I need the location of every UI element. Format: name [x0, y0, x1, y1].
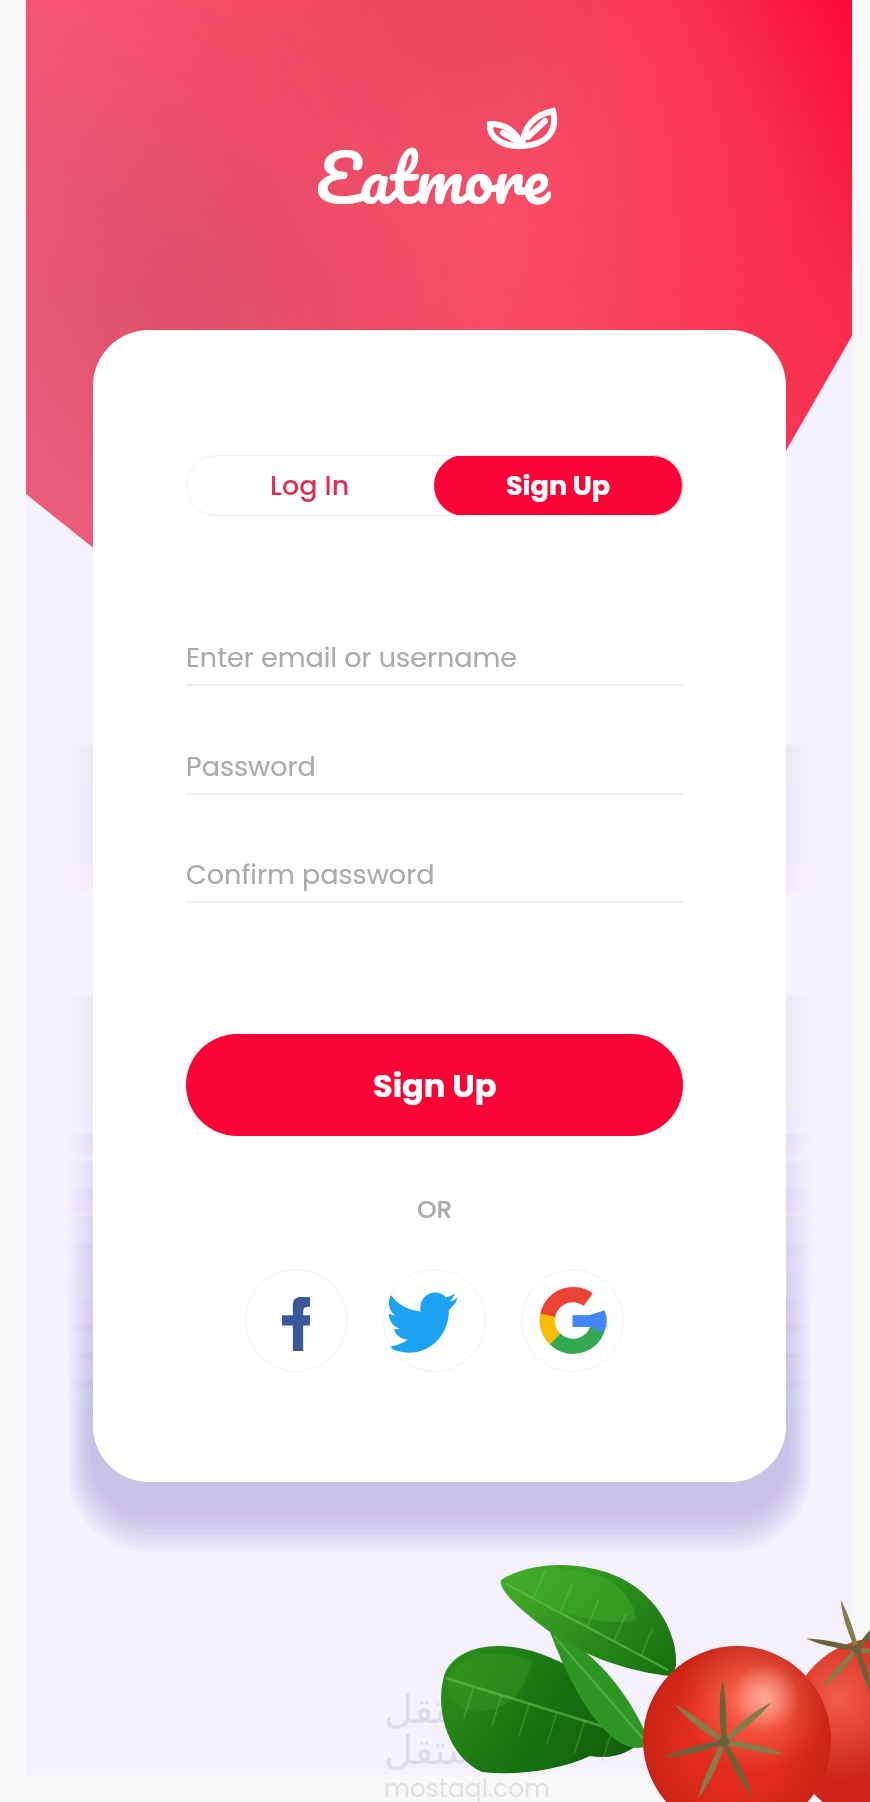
- button[interactable]: Sign Up: [186, 1034, 683, 1136]
- staticText: مستقل: [384, 1686, 504, 1733]
- staticText: Enter email or username: [186, 639, 518, 677]
- staticText: Sign Up: [506, 467, 611, 505]
- staticText: مستقل: [384, 1727, 504, 1774]
- staticText: Password: [186, 748, 316, 786]
- button[interactable]: Sign up with Twitter: [383, 1269, 486, 1372]
- staticText: Confirm password: [186, 856, 435, 894]
- staticText: Eatmore: [316, 119, 550, 233]
- button[interactable]: Log In: [186, 455, 434, 516]
- staticText: Sign Up: [373, 1063, 497, 1108]
- button[interactable]: Sign up with Facebook: [245, 1269, 348, 1372]
- staticText: OR: [417, 1192, 453, 1227]
- button[interactable]: Sign up with Google: [521, 1269, 624, 1372]
- staticText: mostaql.com: [384, 1771, 551, 1802]
- button[interactable]: Sign Up: [434, 455, 683, 516]
- staticText: Log In: [270, 467, 350, 505]
